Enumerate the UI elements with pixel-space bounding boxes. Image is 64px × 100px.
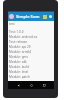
staticText: Module: arm64 <box>9 50 32 54</box>
button[interactable]: Home <box>28 82 34 88</box>
staticText: Module: level <box>9 70 29 74</box>
button[interactable]: Module: arm64 <box>9 49 54 54</box>
button[interactable]: More options <box>49 15 52 18</box>
staticText: Simple Som <box>16 14 40 20</box>
button[interactable]: Test: release <box>9 39 54 44</box>
staticText: Test: release <box>9 40 27 44</box>
button[interactable]: Recent apps <box>41 82 47 88</box>
button[interactable]: Back <box>15 82 21 88</box>
staticText: Test: 1.0.0 <box>9 30 24 34</box>
button[interactable]: Module: build <box>9 64 54 69</box>
button[interactable]: Module: patch <box>9 74 54 79</box>
button[interactable]: Module: sdk <box>9 59 54 64</box>
staticText: Module: android.os <box>9 35 38 39</box>
button[interactable]: Module: api 29 <box>9 44 54 49</box>
staticText: Module: patch <box>9 75 30 79</box>
staticText: Module: sdk <box>9 60 27 64</box>
staticText: Module: api 29 <box>9 45 31 49</box>
staticText: test <box>9 22 15 26</box>
button[interactable]: Module: android.os <box>9 34 54 39</box>
staticText: Module: build <box>9 65 29 69</box>
button[interactable]: Module: gms <box>9 54 54 59</box>
button[interactable]: Module: level <box>9 69 54 74</box>
button[interactable]: Profile <box>9 14 14 19</box>
button[interactable]: Test: 1.0.0 <box>9 29 54 34</box>
staticText: Module: gms <box>9 55 28 59</box>
